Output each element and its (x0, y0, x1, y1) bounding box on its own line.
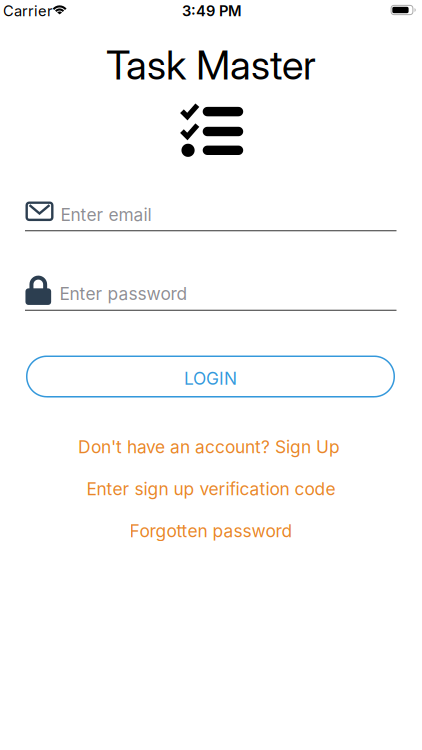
staticText: 3:49 PM (182, 2, 242, 20)
button[interactable]: LOGIN (26, 355, 395, 397)
staticText: Enter sign up verification code (86, 479, 335, 499)
button[interactable]: Enter email (25, 197, 396, 233)
staticText: Enter password (59, 284, 187, 304)
staticText: Forgotten password (129, 521, 292, 541)
staticText: Carrier (3, 2, 53, 20)
button[interactable]: Enter password (25, 274, 396, 312)
staticText: Enter email (60, 204, 151, 225)
staticText: LOGIN (184, 368, 237, 389)
button[interactable]: Enter sign up verification code (86, 479, 335, 499)
staticText: Don't have an account? Sign Up (78, 437, 340, 457)
button[interactable]: Don't have an account? Sign Up (78, 437, 340, 457)
button[interactable]: Forgotten password (129, 521, 292, 541)
staticText: Task Master (106, 41, 316, 89)
